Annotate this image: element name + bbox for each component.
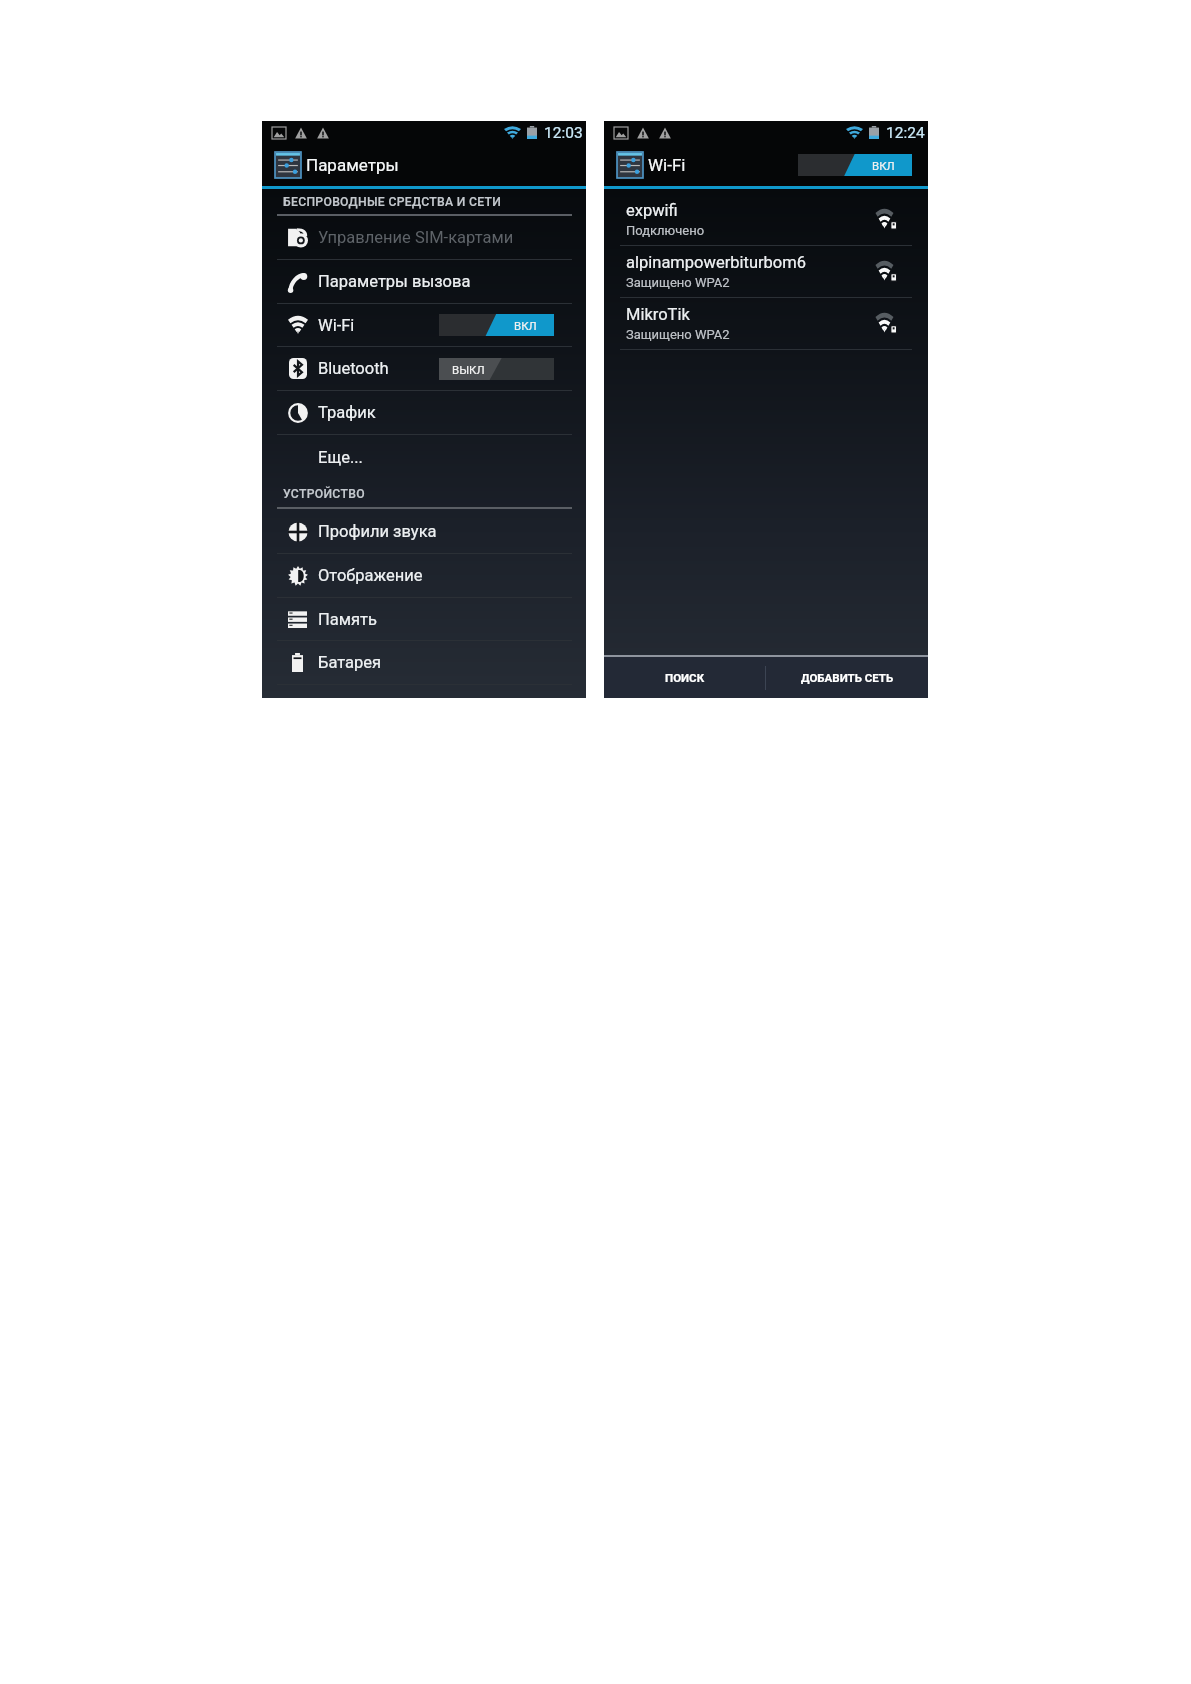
staticText: Профили звука [318,522,437,541]
staticText: 12:03 [544,124,583,142]
staticText: alpinampowerbiturbom6 [626,253,807,272]
staticText: ВКЛ [514,319,537,332]
button[interactable]: Параметры вызова [262,260,586,304]
button[interactable]: Отображение [262,554,586,598]
button[interactable]: Switch on [439,314,554,336]
button[interactable]: ДОБАВИТЬ СЕТЬ [766,657,928,698]
staticText: Wi-Fi [318,316,355,335]
staticText: Защищено WPA2 [626,327,730,342]
button[interactable]: ПОИСК [604,657,765,698]
staticText: ДОБАВИТЬ СЕТЬ [801,671,894,684]
staticText: Параметры вызова [318,272,471,291]
staticText: Параметры [306,155,399,175]
staticText: MikroTik [626,305,690,324]
button[interactable]: Управление SIM-картами [262,216,586,260]
button[interactable]: Bluetooth [262,347,586,391]
staticText: Защищено WPA2 [626,275,730,290]
staticText: ВЫКЛ [452,363,485,376]
button[interactable]: Switch off [439,358,554,380]
staticText: Wi-Fi [648,155,686,175]
staticText: Еще... [318,448,363,467]
button[interactable]: Батарея [262,641,586,685]
staticText: Память [318,610,377,629]
staticText: Bluetooth [318,359,389,378]
staticText: ВКЛ [872,159,895,172]
staticText: Трафик [318,403,376,422]
staticText: Отображение [318,566,423,585]
staticText: ПОИСК [665,671,705,684]
button[interactable]: Wi-Fi [262,304,586,347]
button[interactable]: MikroTik [604,298,928,350]
staticText: expwifi [626,201,678,220]
staticText: Подключено [626,223,705,238]
staticText: УСТРОЙСТВО [283,487,365,501]
button[interactable]: Трафик [262,391,586,435]
button[interactable]: expwifi [604,194,928,246]
staticText: 12:24 [886,124,925,142]
button[interactable]: alpinampowerbiturbom6 [604,246,928,298]
button[interactable]: Профили звука [262,509,586,554]
staticText: Батарея [318,653,382,672]
staticText: Управление SIM-картами [318,228,514,247]
button[interactable]: Память [262,598,586,641]
staticText: БЕСПРОВОДНЫЕ СРЕДСТВА И СЕТИ [283,195,502,209]
button[interactable]: Switch on [798,154,912,176]
button[interactable]: Еще... [262,435,586,479]
